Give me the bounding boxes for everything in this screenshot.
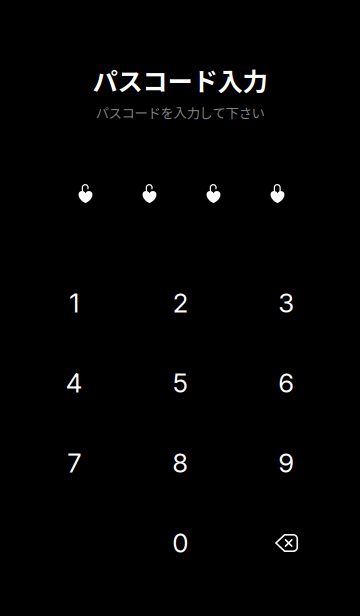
button[interactable]: 6: [233, 343, 339, 423]
staticText: 8: [172, 447, 188, 479]
staticText: 4: [66, 367, 83, 399]
button[interactable]: 5: [127, 343, 233, 423]
button[interactable]: 7: [21, 423, 127, 503]
staticText: 2: [173, 287, 188, 319]
staticText: パスコードを入力して下さい: [95, 103, 264, 122]
button[interactable]: 4: [21, 343, 127, 423]
button[interactable]: 0: [127, 503, 233, 583]
staticText: 0: [172, 527, 188, 559]
staticText: 9: [278, 447, 294, 479]
staticText: 6: [278, 367, 294, 399]
button[interactable]: 1: [21, 263, 127, 343]
button[interactable]: Delete: [233, 503, 339, 583]
button[interactable]: 9: [233, 423, 339, 503]
button[interactable]: 2: [127, 263, 233, 343]
staticText: 3: [278, 287, 294, 319]
staticText: 1: [69, 287, 79, 319]
button[interactable]: 8: [127, 423, 233, 503]
staticText: パスコード入力: [92, 62, 267, 98]
staticText: 7: [67, 447, 81, 479]
staticText: 5: [173, 367, 188, 399]
button[interactable]: 3: [233, 263, 339, 343]
